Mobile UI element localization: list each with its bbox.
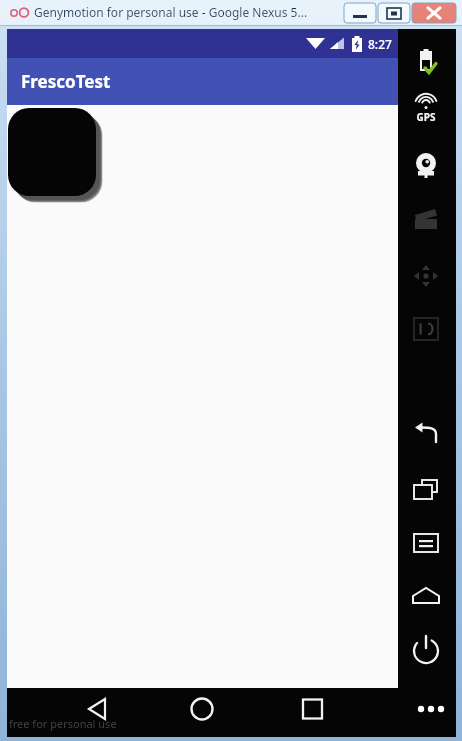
staticText: FrescoTest	[21, 70, 111, 93]
button[interactable]: Loaded image thumbnail	[8, 108, 96, 196]
button[interactable]: Identifiers	[404, 309, 448, 349]
button[interactable]: Camera	[404, 145, 448, 185]
button[interactable]: Close	[412, 3, 456, 23]
button[interactable]: Home	[176, 689, 228, 729]
button[interactable]: Back	[404, 415, 448, 455]
button[interactable]: Screen recorder	[404, 200, 448, 240]
button[interactable]: Restore	[378, 3, 410, 23]
staticText: 8:27	[368, 36, 392, 52]
button[interactable]: Battery	[404, 42, 448, 82]
button[interactable]: Home	[404, 577, 448, 617]
button[interactable]: Recent apps	[287, 689, 339, 729]
staticText: GPS	[412, 110, 440, 124]
button[interactable]: GPS	[404, 86, 448, 126]
button[interactable]: Recent apps	[404, 470, 448, 510]
button[interactable]: Menu	[404, 523, 448, 563]
button[interactable]: Navigation pad	[404, 256, 448, 296]
staticText: free for personal use	[9, 716, 117, 731]
button[interactable]: Minimize	[344, 3, 376, 23]
staticText: Genymotion for personal use - Google Nex…	[34, 4, 308, 20]
button[interactable]: Back	[70, 689, 126, 729]
button[interactable]: More options	[406, 689, 452, 729]
button[interactable]: Power	[404, 631, 448, 671]
button[interactable]: FrescoTest	[7, 58, 398, 105]
